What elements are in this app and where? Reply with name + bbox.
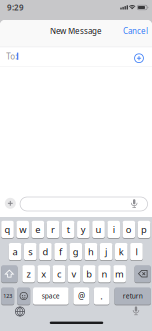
staticText: . — [100, 290, 103, 302]
staticText: q — [4, 223, 10, 236]
staticText: To: — [6, 51, 17, 62]
staticText: o — [126, 223, 132, 236]
button[interactable]: r — [47, 220, 59, 238]
staticText: 123 — [3, 292, 12, 300]
staticText: 9:29 — [7, 2, 24, 13]
staticText: w — [19, 223, 26, 236]
staticText: l — [135, 245, 137, 258]
button[interactable]: Add Contact — [133, 53, 144, 64]
staticText: y — [81, 223, 86, 236]
staticText: z — [27, 268, 31, 280]
button[interactable]: v — [68, 265, 80, 283]
button[interactable]: o — [123, 220, 135, 238]
staticText: t — [67, 223, 70, 236]
button[interactable]: k — [115, 242, 128, 261]
button[interactable]: d — [39, 242, 52, 261]
button[interactable]: x — [37, 265, 50, 283]
button[interactable]: Apps — [4, 197, 16, 209]
staticText: e — [35, 223, 40, 236]
button[interactable]: u — [92, 220, 105, 238]
staticText: @ — [78, 291, 85, 301]
button[interactable]: c — [53, 265, 65, 283]
button[interactable]: space — [33, 287, 69, 305]
button[interactable]: w — [16, 220, 29, 238]
staticText: d — [42, 245, 48, 258]
button[interactable]: Emoji — [17, 287, 30, 305]
button[interactable]: m — [113, 265, 126, 283]
staticText: Cancel — [123, 26, 148, 36]
button[interactable]: p — [138, 220, 150, 238]
staticText: k — [119, 245, 124, 258]
staticText: j — [105, 245, 107, 258]
button[interactable]: f — [54, 242, 67, 261]
button[interactable]: e — [31, 220, 44, 238]
button[interactable]: Dictation — [131, 306, 141, 317]
staticText: b — [86, 268, 92, 280]
button[interactable]: z — [22, 265, 35, 283]
staticText: r — [51, 223, 55, 236]
button[interactable]: b — [83, 265, 96, 283]
button[interactable]: @ — [73, 287, 89, 305]
button[interactable]: l — [130, 242, 143, 261]
staticText: space — [42, 292, 60, 300]
staticText: i — [113, 223, 115, 236]
button[interactable]: Next Keyboard — [14, 306, 25, 317]
button[interactable]: j — [100, 242, 112, 261]
button[interactable]: Numbers — [1, 287, 14, 305]
staticText: n — [101, 268, 107, 280]
staticText: a — [13, 245, 18, 258]
staticText: f — [59, 245, 62, 258]
button[interactable]: s — [24, 242, 37, 261]
staticText: m — [115, 268, 124, 280]
button[interactable]: i — [107, 220, 120, 238]
button[interactable]: Dictate — [129, 199, 139, 209]
staticText: h — [88, 245, 94, 258]
button[interactable]: y — [77, 220, 90, 238]
staticText: return — [123, 292, 143, 300]
staticText: u — [95, 223, 101, 236]
staticText: v — [72, 268, 77, 280]
button[interactable]: return — [114, 287, 151, 305]
staticText: c — [57, 268, 61, 280]
staticText: g — [73, 245, 79, 258]
button[interactable]: q — [1, 220, 14, 238]
button[interactable]: Shift — [1, 265, 17, 283]
staticText: New Message — [50, 26, 102, 36]
button[interactable]: t — [62, 220, 74, 238]
button[interactable]: Cancel — [123, 26, 148, 36]
staticText: s — [28, 245, 32, 258]
button[interactable]: . — [94, 287, 109, 305]
button[interactable]: Delete — [134, 265, 151, 283]
button[interactable]: a — [9, 242, 21, 261]
button[interactable]: n — [98, 265, 111, 283]
button[interactable]: g — [69, 242, 82, 261]
staticText: p — [141, 223, 147, 236]
button[interactable]: h — [85, 242, 97, 261]
staticText: x — [41, 268, 46, 280]
